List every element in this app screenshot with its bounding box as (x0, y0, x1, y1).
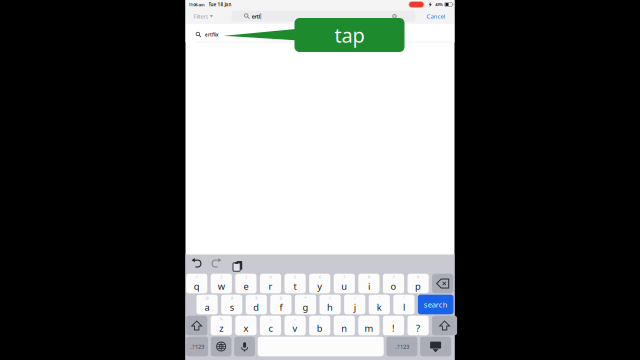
button[interactable]: # (221, 295, 242, 314)
button[interactable]: Clear text (390, 12, 398, 20)
button[interactable]: 7 (334, 274, 355, 293)
staticText: ? (416, 322, 420, 334)
staticText: 4 (269, 275, 271, 280)
button[interactable]: 0 (407, 274, 429, 293)
button[interactable]: ) (344, 295, 365, 314)
staticText: k (377, 301, 382, 313)
button[interactable]: . (407, 316, 429, 335)
button[interactable]: + (260, 316, 281, 335)
button[interactable]: 1 (186, 274, 207, 293)
staticText: n (341, 322, 347, 334)
button[interactable]: Next keyboard (211, 337, 231, 356)
staticText: r (268, 280, 272, 292)
button[interactable]: 4 (260, 274, 281, 293)
staticText: g (302, 301, 308, 313)
staticText: x (243, 322, 248, 334)
button[interactable]: , (383, 316, 404, 335)
staticText: z (219, 322, 223, 334)
staticText: .?123 (190, 342, 204, 350)
staticText: + (269, 317, 271, 322)
button[interactable]: .?123 (186, 337, 208, 356)
staticText: & (279, 296, 282, 301)
staticText: , (393, 317, 394, 322)
button[interactable]: $ (246, 295, 267, 314)
button[interactable]: 6 (309, 274, 330, 293)
staticText: a (205, 301, 210, 313)
staticText: ' (379, 296, 380, 301)
button[interactable]: : (358, 316, 379, 335)
staticText: l (403, 301, 405, 313)
button[interactable]: ertflix (185, 23, 454, 42)
button[interactable]: Shift (432, 316, 457, 335)
button[interactable]: 9 (383, 274, 404, 293)
staticText: 1 (196, 275, 198, 280)
button[interactable]: " (393, 295, 414, 314)
button[interactable]: 8 (358, 274, 379, 293)
staticText: s (230, 301, 234, 313)
button[interactable]: Undo (190, 257, 203, 270)
staticText: 9 (392, 275, 394, 280)
staticText: i (368, 280, 370, 292)
staticText: e (243, 280, 248, 292)
staticText: 43% (435, 2, 443, 7)
staticText: Cancel (426, 12, 445, 20)
button[interactable]: 2 (211, 274, 232, 293)
staticText: y (317, 280, 322, 292)
staticText: 5 (294, 275, 296, 280)
button[interactable]: * (295, 295, 316, 314)
button[interactable]: - (235, 316, 256, 335)
staticText: o (390, 280, 396, 292)
staticText: % (220, 317, 223, 322)
staticText: ! (392, 322, 395, 334)
button[interactable]: Paste (228, 257, 241, 270)
staticText: search (424, 299, 448, 310)
staticText: c (268, 322, 272, 334)
staticText: w (218, 280, 225, 292)
button[interactable]: Redo (209, 257, 222, 270)
button[interactable]: ; (334, 316, 355, 335)
staticText: Tue 18 Jan (208, 1, 231, 8)
staticText: 3 (245, 275, 247, 280)
button[interactable]: = (284, 316, 306, 335)
staticText: m (364, 322, 373, 334)
staticText: 6 (319, 275, 321, 280)
button[interactable]: Cancel (424, 10, 447, 22)
button[interactable]: search (418, 295, 453, 314)
button[interactable]: ' (369, 295, 390, 314)
staticText: 2 (220, 275, 222, 280)
staticText: 8 (368, 275, 370, 280)
button[interactable]: Shift (186, 316, 207, 335)
staticText: ) (354, 296, 355, 301)
staticText: . (418, 317, 419, 322)
staticText: d (253, 301, 259, 313)
staticText: q (194, 280, 200, 292)
button[interactable]: Filters (189, 10, 217, 22)
staticText: j (354, 301, 356, 313)
button[interactable]: @ (196, 295, 218, 314)
button[interactable]: % (211, 316, 232, 335)
staticText: 7 (343, 275, 345, 280)
staticText: f (279, 301, 282, 313)
staticText: t (294, 280, 297, 292)
button[interactable]: Backspace (432, 274, 453, 293)
staticText: / (319, 317, 320, 322)
button[interactable]: / (309, 316, 330, 335)
staticText: ertflix (205, 32, 218, 38)
button[interactable]: Dictation (234, 337, 255, 356)
button[interactable]: 5 (284, 274, 306, 293)
button[interactable]: ( (319, 295, 341, 314)
staticText: p (415, 280, 421, 292)
staticText: ertl (251, 12, 260, 20)
button[interactable]: & (270, 295, 291, 314)
staticText: tap (334, 21, 364, 49)
staticText: : (368, 317, 369, 322)
staticText: " (403, 296, 405, 301)
button[interactable]: Hide keyboard (420, 337, 451, 356)
staticText: Filters (193, 12, 208, 20)
staticText: b (317, 322, 323, 334)
button[interactable]: .?123 (386, 337, 417, 356)
button[interactable]: 3 (235, 274, 256, 293)
staticText: ( (330, 296, 331, 301)
staticText: $ (255, 296, 257, 301)
